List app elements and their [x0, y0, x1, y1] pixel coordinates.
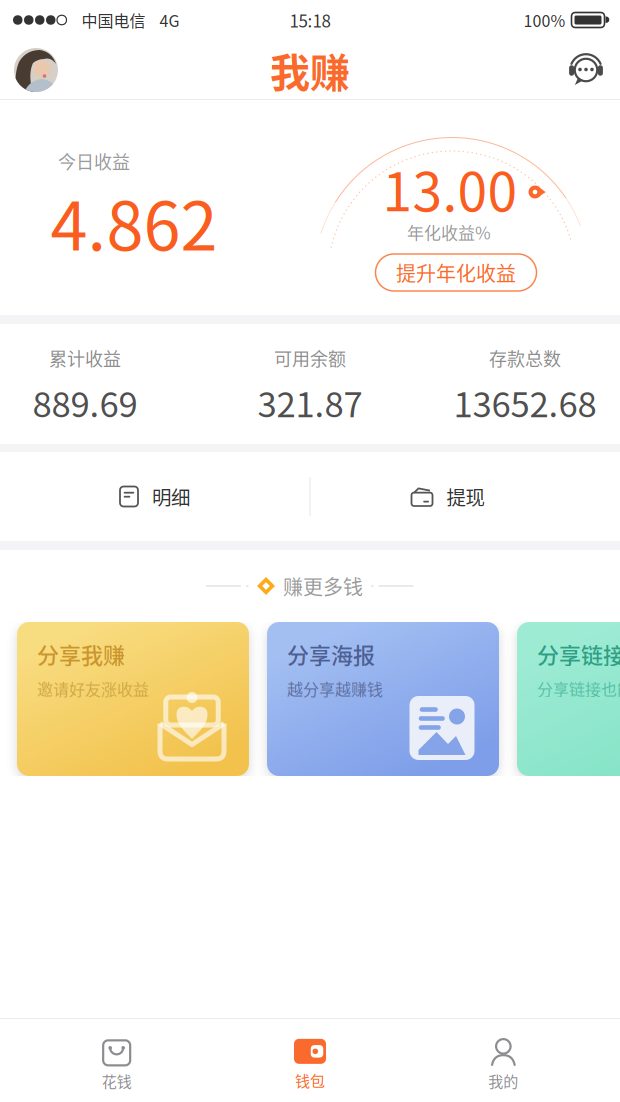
staticText: 存款总数: [489, 345, 561, 371]
staticText: 分享海报: [287, 638, 375, 670]
button[interactable]: 花钱: [20, 1038, 213, 1092]
button[interactable]: Customer service: [567, 51, 605, 89]
button[interactable]: 提现: [298, 452, 598, 541]
staticText: 13.00: [382, 149, 517, 227]
staticText: 今日收益: [58, 148, 130, 174]
staticText: 分享链接: [537, 638, 620, 670]
button[interactable]: 分享我赚: [17, 622, 249, 776]
button[interactable]: 提升年化收益: [375, 254, 536, 291]
staticText: 分享链接也能赚钱: [537, 677, 620, 700]
button[interactable]: 明细: [5, 452, 305, 541]
staticText: 可用余额: [274, 345, 346, 371]
staticText: 明细: [152, 482, 190, 511]
staticText: 100%: [523, 8, 565, 32]
staticText: 钱包: [295, 1069, 325, 1091]
staticText: 4.862: [50, 173, 217, 270]
staticText: 15:18: [289, 8, 330, 32]
staticText: 越分享越赚钱: [287, 677, 383, 700]
staticText: 累计收益: [49, 345, 121, 371]
staticText: 889.69: [32, 377, 137, 427]
staticText: 提现: [446, 482, 484, 511]
staticText: 中国电信: [81, 8, 145, 32]
staticText: 我的: [488, 1070, 518, 1092]
staticText: 13652.68: [453, 377, 596, 427]
button[interactable]: 钱包: [213, 1039, 407, 1091]
staticText: 赚更多钱: [283, 571, 363, 600]
staticText: 年化收益%: [407, 220, 491, 244]
staticText: 321.87: [257, 377, 362, 427]
staticText: 分享我赚: [37, 638, 125, 670]
staticText: 4G: [159, 8, 179, 32]
staticText: 我赚: [270, 41, 350, 99]
button[interactable]: 分享链接: [517, 622, 620, 776]
button[interactable]: Profile: [14, 48, 58, 92]
button[interactable]: Hide yield: [528, 185, 545, 198]
staticText: 邀请好友涨收益: [37, 677, 149, 700]
staticText: 提升年化收益: [396, 258, 516, 287]
button[interactable]: 分享海报: [267, 622, 499, 776]
staticText: 花钱: [102, 1070, 132, 1092]
button[interactable]: 我的: [407, 1038, 600, 1092]
